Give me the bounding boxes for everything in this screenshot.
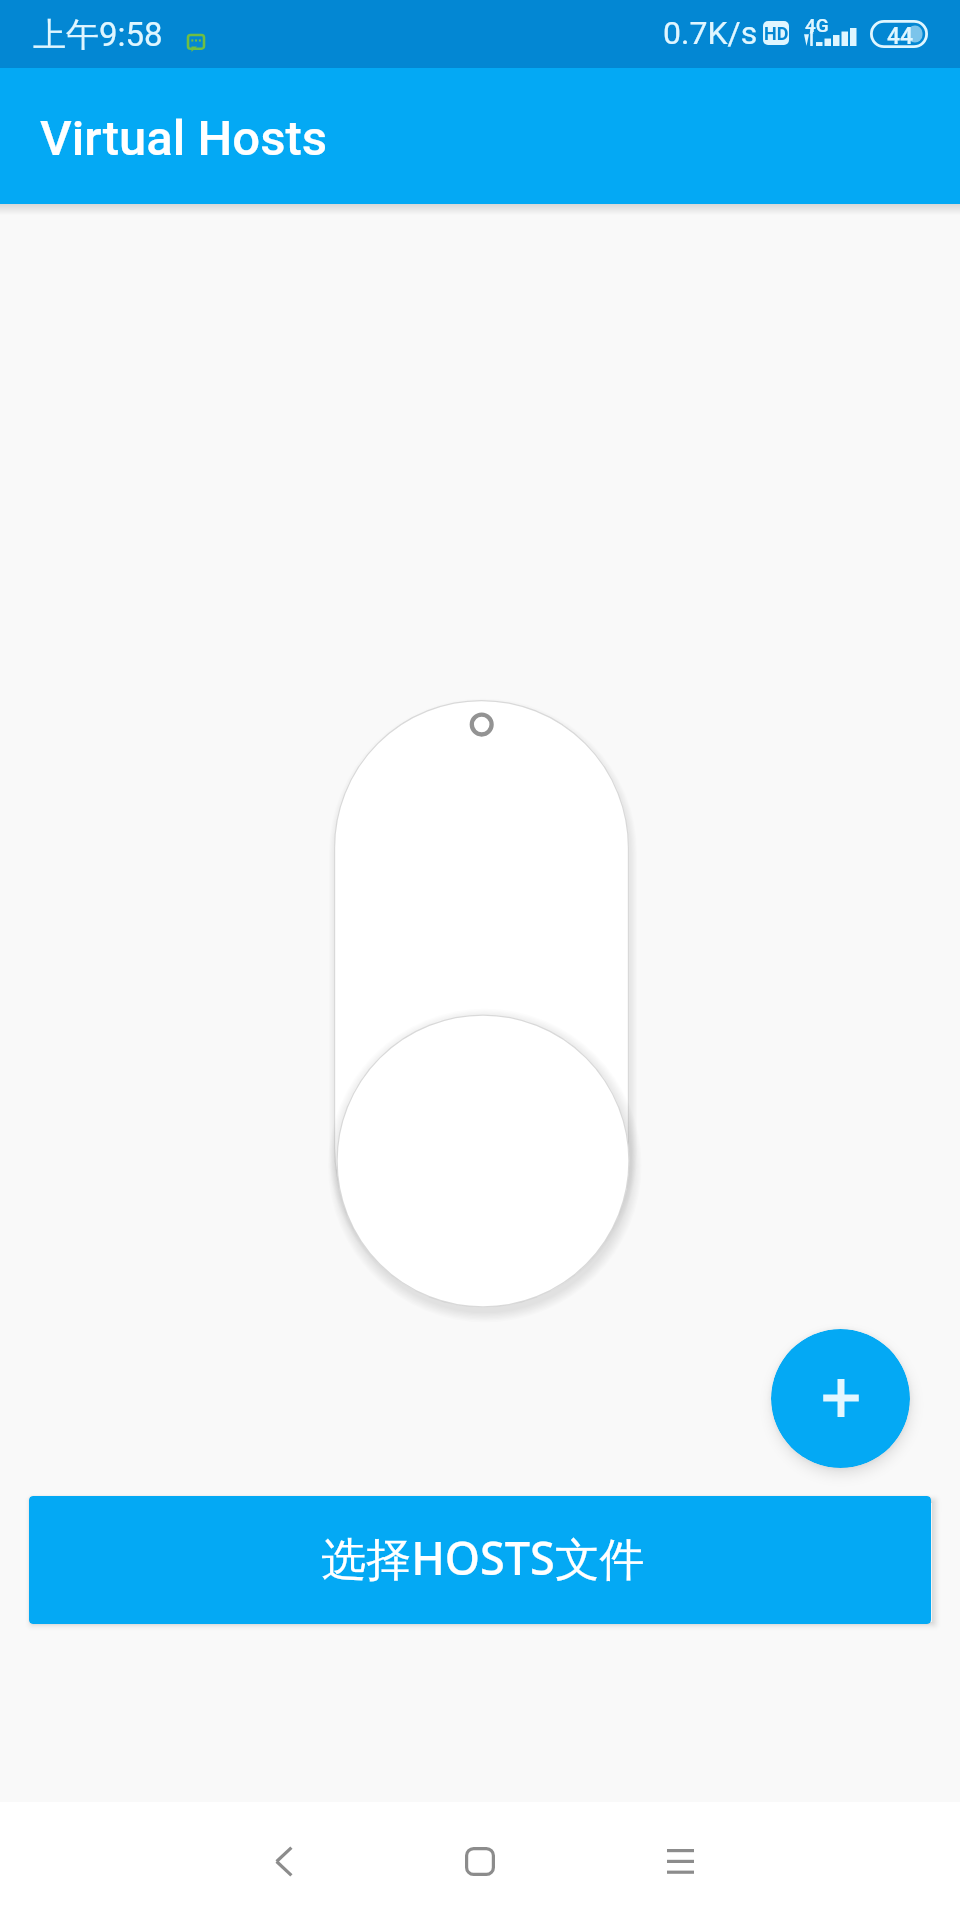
button[interactable]: Back [224, 1802, 344, 1920]
staticText: Virtual Hosts [40, 110, 328, 167]
staticText: 选择HOSTS文件 [321, 1527, 645, 1588]
staticText: 44 [887, 23, 914, 50]
staticText: HD [764, 23, 789, 44]
button[interactable]: Add host [771, 1329, 910, 1468]
button[interactable]: Recent apps [620, 1802, 740, 1920]
button[interactable]: Home [420, 1802, 540, 1920]
staticText: 0.7K/s [663, 14, 758, 52]
staticText: 上午9:58 [33, 14, 163, 56]
button[interactable]: 选择HOSTS文件 [29, 1496, 931, 1624]
staticText: 4G [805, 14, 829, 36]
